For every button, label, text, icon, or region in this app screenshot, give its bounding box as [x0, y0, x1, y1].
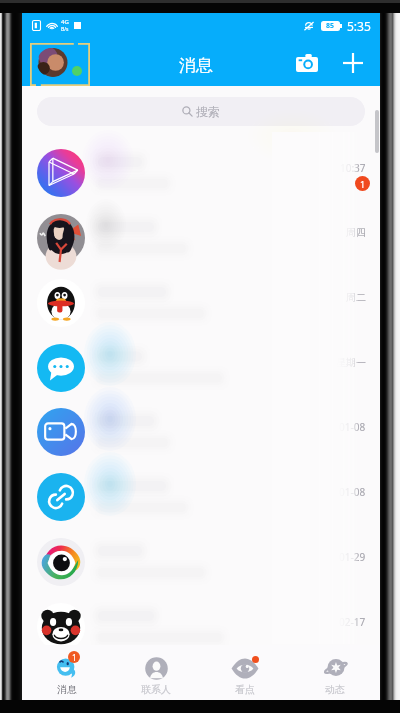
staticText: 联系人 — [141, 683, 171, 696]
staticText: 周二 — [346, 291, 366, 304]
button[interactable]: 消息 — [22, 645, 111, 700]
staticText: 5:35 — [347, 18, 371, 34]
button[interactable]: 联系人 — [111, 645, 200, 700]
button[interactable]: Add — [337, 47, 369, 79]
button[interactable] — [22, 595, 380, 659]
button[interactable]: 动态 — [290, 645, 380, 700]
button[interactable]: 搜索 — [37, 97, 365, 126]
staticText: B/s — [61, 26, 69, 33]
staticText: 10:37 — [340, 161, 366, 175]
staticText: 消息 — [179, 55, 213, 76]
button[interactable]: 看点 — [200, 645, 290, 700]
staticText: 搜索 — [196, 104, 220, 119]
button[interactable]: Profile avatar — [30, 43, 90, 86]
staticText: 消息 — [57, 683, 77, 696]
staticText: 01-08 — [339, 420, 366, 434]
button[interactable] — [22, 271, 380, 335]
staticText: 1 — [360, 178, 366, 190]
button[interactable]: Camera — [291, 47, 323, 79]
staticText: 4G — [61, 18, 69, 26]
staticText: 星期一 — [336, 356, 366, 369]
button[interactable] — [22, 530, 380, 594]
button[interactable] — [22, 465, 380, 529]
staticText: 动态 — [325, 683, 345, 696]
staticText: 周四 — [346, 226, 366, 239]
staticText: 1 — [72, 652, 77, 663]
button[interactable] — [22, 336, 380, 400]
staticText: 01-08 — [339, 485, 366, 499]
button[interactable] — [22, 141, 380, 205]
staticText: 85 — [326, 21, 335, 31]
button[interactable] — [22, 206, 380, 270]
staticText: 01-29 — [339, 550, 366, 564]
staticText: 02-17 — [339, 615, 366, 629]
staticText: 看点 — [235, 683, 255, 696]
button[interactable] — [22, 400, 380, 464]
